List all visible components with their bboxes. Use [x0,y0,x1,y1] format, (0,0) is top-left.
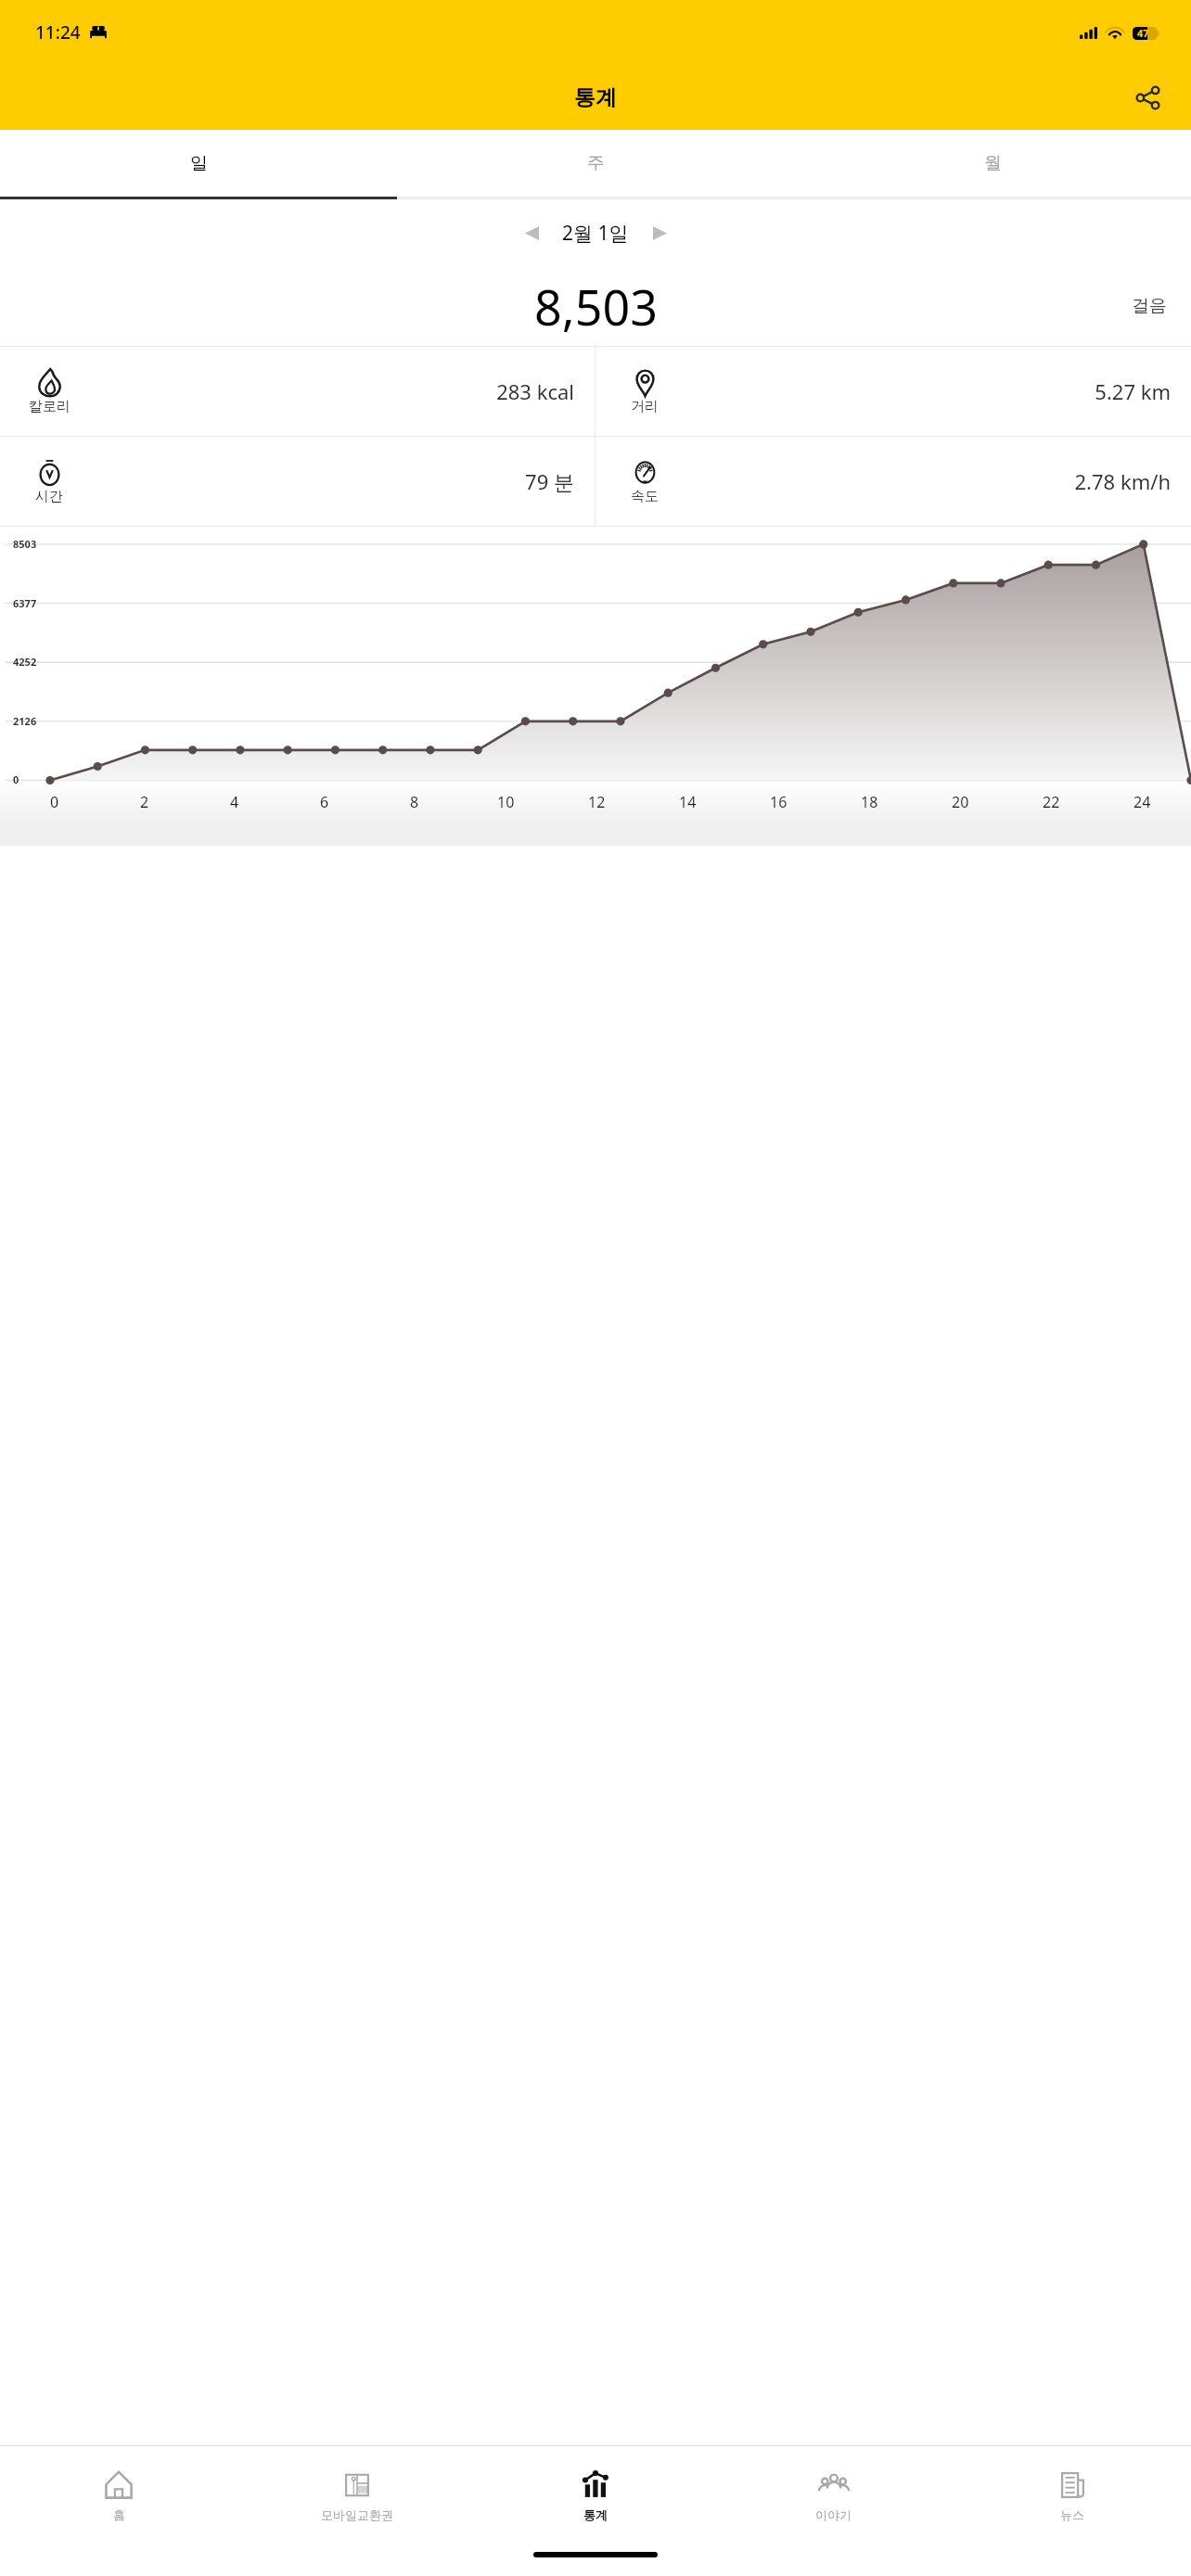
staticText: 주 [587,152,605,174]
staticText: 5.27 km [677,377,1171,405]
staticText: 8503 [13,537,37,551]
staticText: 2126 [13,714,37,728]
staticText: 2월 1일 [562,220,629,247]
button[interactable]: 홈 [0,2446,237,2544]
staticText: 뉴스 [1060,2507,1084,2522]
button[interactable]: 모바일교환권 [237,2446,476,2544]
button[interactable]: Share [1124,74,1171,121]
staticText: 79 분 [82,467,574,495]
button[interactable]: 시간 [0,437,595,526]
button[interactable]: 칼로리 [0,347,595,436]
staticText: 283 kcal [82,377,574,405]
staticText: 시간 [35,488,63,505]
staticText: 22 [1043,792,1060,812]
staticText: 6 [320,792,329,812]
staticText: 16 [770,792,788,812]
staticText: 일 [190,152,208,174]
staticText: 통계 [583,2507,608,2522]
staticText: 걸음 [1132,295,1167,317]
staticText: 속도 [631,488,659,505]
staticText: 월 [984,152,1002,174]
button[interactable]: 속도 [595,437,1191,526]
staticText: 4 [230,792,239,812]
staticText: 20 [952,792,969,812]
staticText: 24 [1133,792,1151,812]
staticText: 12 [588,792,606,812]
button[interactable]: 통계 [476,2446,714,2544]
staticText: 홈 [113,2507,125,2522]
staticText: 10 [497,792,515,812]
staticText: 8,503 [534,274,658,339]
button[interactable]: Next day [638,211,681,254]
staticText: 4252 [13,655,37,669]
button[interactable]: Previous day [510,211,553,254]
button[interactable]: 거리 [595,347,1191,436]
staticText: 0 [50,792,59,812]
staticText: 2.78 km/h [677,467,1171,495]
staticText: 11:24 [35,20,81,45]
staticText: 8 [410,792,419,812]
staticText: 14 [679,792,697,812]
button[interactable]: 이야기 [714,2446,953,2544]
button[interactable]: 주 [397,130,794,197]
button[interactable]: 일 [0,130,397,197]
staticText: 6377 [13,596,37,610]
staticText: 모바일교환권 [321,2507,393,2522]
button[interactable]: 월 [794,130,1191,197]
staticText: 0 [13,772,19,786]
staticText: 18 [861,792,878,812]
staticText: 이야기 [815,2507,852,2522]
button[interactable]: 뉴스 [953,2446,1191,2544]
staticText: 2 [140,792,149,812]
staticText: 칼로리 [29,398,70,415]
staticText: 통계 [574,84,617,111]
staticText: 47 [1137,26,1149,40]
staticText: 거리 [631,398,659,415]
